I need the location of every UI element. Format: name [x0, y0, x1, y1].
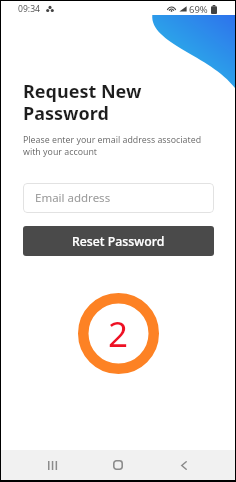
button[interactable]: Reset Password [23, 226, 214, 256]
button[interactable]: Email address [23, 183, 214, 213]
staticText: 69% [189, 3, 208, 16]
button[interactable]: Home [85, 450, 151, 480]
staticText: Please enter your email address associat… [23, 134, 202, 158]
staticText: Email address [35, 190, 111, 206]
button[interactable]: Recent apps [19, 450, 85, 480]
staticText: Request New Password [23, 79, 142, 126]
button[interactable]: Back [151, 450, 217, 480]
staticText: 09:34 [18, 3, 40, 15]
staticText: Reset Password [72, 233, 165, 250]
staticText: 2 [108, 310, 129, 358]
